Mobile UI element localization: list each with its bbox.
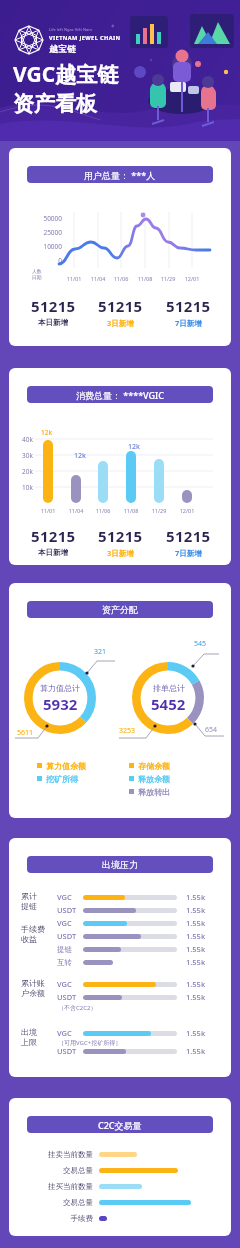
button[interactable]: 消费总量： ****VGIC bbox=[27, 386, 213, 403]
staticText: 1.55k bbox=[186, 957, 206, 967]
button[interactable]: USDT bbox=[57, 1045, 225, 1057]
staticText: 1.55k bbox=[186, 892, 206, 902]
staticText: 12k bbox=[128, 442, 140, 452]
staticText: 释放转出 bbox=[138, 787, 170, 797]
staticText: 25000 bbox=[17, 228, 62, 237]
staticText: 51215 bbox=[98, 296, 143, 316]
staticText: 释放余额 bbox=[138, 774, 170, 784]
staticText: 收益 bbox=[21, 934, 53, 944]
button[interactable]: 用户总量： ***人 bbox=[27, 166, 213, 183]
staticText: 11/06 bbox=[109, 275, 133, 282]
button[interactable]: 互转 bbox=[57, 956, 225, 968]
staticText: 1.55k bbox=[186, 905, 206, 915]
staticText: VGC bbox=[57, 892, 72, 902]
staticText: 51215 bbox=[31, 526, 76, 546]
staticText: 30k bbox=[13, 451, 33, 460]
staticText: 40k bbox=[13, 435, 33, 444]
button[interactable]: 51215 bbox=[19, 296, 87, 327]
button[interactable]: 算力值余额 bbox=[37, 759, 86, 772]
button[interactable]: 提链 bbox=[57, 943, 225, 955]
staticText: 7日新增 bbox=[175, 318, 202, 328]
staticText: 12/01 bbox=[175, 507, 199, 514]
staticText: USDT bbox=[57, 931, 77, 941]
staticText: 提链 bbox=[21, 901, 53, 911]
staticText: 日期 bbox=[32, 274, 42, 280]
staticText: 互转 bbox=[57, 958, 72, 967]
staticText: 本日新增 bbox=[38, 548, 68, 557]
button[interactable]: 挖矿所得 bbox=[37, 772, 78, 785]
button[interactable]: USDT bbox=[57, 904, 225, 916]
staticText: 11/01 bbox=[36, 507, 60, 514]
staticText: 算力值余额 bbox=[46, 761, 86, 771]
button[interactable]: 出境压力 bbox=[27, 856, 213, 873]
staticText: 累计账 bbox=[21, 978, 53, 988]
staticText: 51215 bbox=[31, 296, 76, 316]
button[interactable]: 交易总量 bbox=[9, 1195, 231, 1209]
staticText: 交易总量 bbox=[9, 1166, 93, 1175]
staticText: ［可用VGC+挖矿所得］ bbox=[58, 1039, 122, 1047]
staticText: 交易总量 bbox=[9, 1198, 93, 1207]
staticText: 51215 bbox=[166, 296, 211, 316]
staticText: 3日新增 bbox=[107, 548, 134, 558]
button[interactable]: 51215 bbox=[86, 526, 154, 558]
staticText: 越宝链 bbox=[49, 44, 76, 55]
button[interactable]: 51215 bbox=[154, 296, 222, 328]
staticText: 户余额 bbox=[21, 988, 53, 998]
staticText: 手续费 bbox=[9, 1214, 93, 1223]
button[interactable]: VGC bbox=[57, 917, 225, 929]
button[interactable]: 存储余额 bbox=[129, 759, 170, 772]
button[interactable]: C2C交易量 bbox=[27, 1116, 213, 1133]
staticText: 本日新增 bbox=[38, 318, 68, 327]
button[interactable]: VGC bbox=[57, 978, 225, 990]
staticText: 51215 bbox=[166, 526, 211, 546]
staticText: USDT bbox=[57, 992, 77, 1002]
staticText: 资产分配 bbox=[102, 604, 138, 615]
button[interactable]: 挂卖当前数量 bbox=[9, 1147, 231, 1161]
staticText: 545 bbox=[194, 639, 207, 649]
staticText: 存储余额 bbox=[138, 761, 170, 771]
staticText: 11/04 bbox=[86, 275, 110, 282]
staticText: 人数 bbox=[32, 268, 42, 274]
staticText: 11/29 bbox=[156, 275, 180, 282]
button[interactable]: 交易总量 bbox=[9, 1163, 231, 1177]
staticText: 7日新增 bbox=[175, 548, 202, 558]
staticText: VGC越宝链 bbox=[13, 60, 119, 89]
staticText: 算力值总计 bbox=[40, 683, 80, 693]
staticText: 3253 bbox=[119, 726, 136, 736]
staticText: 排单总计 bbox=[153, 683, 185, 693]
staticText: VGC bbox=[57, 1028, 72, 1038]
button[interactable]: 51215 bbox=[154, 526, 222, 558]
button[interactable]: 释放余额 bbox=[129, 772, 170, 785]
staticText: 消费总量： ****VGIC bbox=[76, 389, 164, 401]
staticText: 1.55k bbox=[186, 979, 206, 989]
button[interactable]: 挂买当前数量 bbox=[9, 1179, 231, 1193]
staticText: 挖矿所得 bbox=[46, 774, 78, 784]
button[interactable]: 51215 bbox=[86, 296, 154, 328]
staticText: 用户总量： ***人 bbox=[84, 169, 156, 181]
staticText: 10000 bbox=[17, 242, 62, 251]
button[interactable]: VGC bbox=[57, 891, 225, 903]
staticText: 11/08 bbox=[133, 275, 157, 282]
staticText: 手续费 bbox=[21, 924, 53, 934]
staticText: 654 bbox=[205, 725, 218, 735]
staticText: 出境压力 bbox=[102, 859, 138, 870]
button[interactable]: USDT bbox=[57, 991, 225, 1003]
staticText: 累计 bbox=[21, 891, 53, 901]
staticText: 10k bbox=[13, 483, 33, 492]
button[interactable]: VGC bbox=[57, 1027, 225, 1039]
button[interactable]: 释放转出 bbox=[129, 785, 170, 798]
staticText: 挂卖当前数量 bbox=[9, 1150, 93, 1159]
staticText: 11/29 bbox=[147, 507, 171, 514]
button[interactable]: 51215 bbox=[19, 526, 87, 557]
button[interactable]: 资产分配 bbox=[27, 601, 213, 618]
button[interactable]: 手续费 bbox=[9, 1211, 231, 1225]
staticText: 1.55k bbox=[186, 931, 206, 941]
button[interactable]: USDT bbox=[57, 930, 225, 942]
staticText: VGC bbox=[57, 918, 72, 928]
staticText: 上限 bbox=[21, 1037, 53, 1047]
staticText: 提链 bbox=[57, 945, 72, 954]
staticText: 5932 bbox=[43, 694, 78, 714]
staticText: 5452 bbox=[151, 694, 186, 714]
staticText: 挂买当前数量 bbox=[9, 1182, 93, 1191]
staticText: 20k bbox=[13, 467, 33, 476]
